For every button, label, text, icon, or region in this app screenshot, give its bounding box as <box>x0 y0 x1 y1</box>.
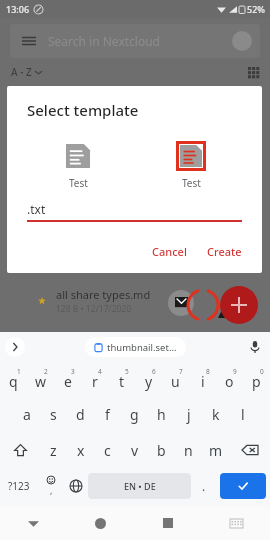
button[interactable]: l <box>229 397 256 432</box>
staticText: Search in Nextcloud <box>48 33 160 49</box>
staticText: w <box>35 372 47 391</box>
staticText: A - Z <box>11 65 32 79</box>
staticText: thumbnail.set… <box>107 341 177 354</box>
staticText: f <box>105 405 110 424</box>
staticText: Create <box>207 244 242 259</box>
staticText: 9 <box>233 367 237 376</box>
button[interactable]: Create <box>199 240 250 263</box>
staticText: x <box>77 441 85 460</box>
button[interactable]: z <box>40 432 67 468</box>
staticText: Select template <box>27 100 139 120</box>
button[interactable]: v <box>121 432 148 468</box>
button[interactable]: thumbnail.set… <box>85 337 186 357</box>
button[interactable]: Emoji <box>38 468 63 504</box>
staticText: r <box>92 372 98 391</box>
button[interactable]: Cancel <box>144 240 195 263</box>
button[interactable]: Home <box>67 506 134 540</box>
button[interactable]: EN • DE <box>88 473 191 499</box>
staticText: c <box>104 441 111 460</box>
button[interactable]: Back <box>0 506 67 540</box>
staticText: l <box>241 405 245 424</box>
button[interactable]: . <box>191 468 216 504</box>
staticText: 8 <box>206 367 210 376</box>
staticText: 0 <box>260 367 264 376</box>
staticText: , <box>50 484 53 496</box>
button[interactable]: 5 <box>108 362 135 397</box>
staticText: v <box>131 441 139 460</box>
staticText: q <box>9 372 18 391</box>
button[interactable]: 6 <box>135 362 162 397</box>
staticText: t <box>119 372 125 391</box>
staticText: 13:06 <box>6 3 30 15</box>
button[interactable]: 2 <box>27 362 54 397</box>
other: Menu <box>22 34 36 48</box>
button[interactable]: Menu <box>10 24 260 58</box>
button[interactable]: s <box>40 397 67 432</box>
button[interactable]: j <box>175 397 202 432</box>
staticText: all share types.md <box>56 287 151 302</box>
staticText: ?123 <box>8 479 30 493</box>
other: Mail <box>175 297 188 310</box>
button[interactable]: a <box>13 397 40 432</box>
button[interactable]: ?123 <box>0 468 38 504</box>
button[interactable]: h <box>148 397 175 432</box>
button[interactable]: Change language <box>63 468 88 504</box>
staticText: 6 <box>152 367 156 376</box>
button[interactable]: 1 <box>0 362 27 397</box>
staticText: n <box>184 441 193 460</box>
button[interactable]: 8 <box>189 362 216 397</box>
button[interactable]: 3 <box>54 362 81 397</box>
button[interactable]: n <box>175 432 202 468</box>
other: Voice input <box>249 341 261 353</box>
button[interactable]: Recents <box>134 506 202 540</box>
button[interactable]: x <box>67 432 94 468</box>
staticText: 1 <box>17 367 21 376</box>
staticText: m <box>209 441 223 460</box>
button[interactable]: Add <box>220 286 258 324</box>
button[interactable]: k <box>202 397 229 432</box>
button[interactable]: Account <box>232 31 252 51</box>
staticText: 4 <box>98 367 102 376</box>
staticText: 128 B • 12/17/2020 <box>56 303 132 315</box>
staticText: 2 <box>44 367 48 376</box>
button[interactable]: g <box>121 397 148 432</box>
button[interactable]: 9 <box>216 362 243 397</box>
button[interactable]: Test <box>60 138 96 193</box>
button[interactable]: 4 <box>81 362 108 397</box>
button[interactable]: 7 <box>162 362 189 397</box>
staticText: g <box>130 405 139 424</box>
button[interactable]: Grid view <box>248 67 259 78</box>
staticText: b <box>157 441 166 460</box>
staticText: .txt <box>27 201 46 217</box>
staticText: e <box>64 372 72 391</box>
button[interactable]: d <box>67 397 94 432</box>
staticText: d <box>76 405 85 424</box>
staticText: u <box>171 372 180 391</box>
staticText: Cancel <box>152 244 187 259</box>
button[interactable]: m <box>202 432 229 468</box>
button[interactable]: 0 <box>243 362 270 397</box>
button[interactable]: Done <box>220 473 266 499</box>
button[interactable]: More suggestions <box>5 337 25 357</box>
staticText: y <box>145 372 153 391</box>
staticText: j <box>187 405 191 424</box>
staticText: 7 <box>179 367 183 376</box>
staticText: 52% <box>247 3 265 15</box>
button[interactable]: Backspace <box>229 432 270 468</box>
staticText: 3 <box>71 367 75 376</box>
staticText: k <box>212 405 220 424</box>
button[interactable]: f <box>94 397 121 432</box>
button[interactable]: Hide keyboard <box>202 506 270 540</box>
button[interactable]: c <box>94 432 121 468</box>
staticText: o <box>225 372 234 391</box>
staticText: h <box>157 405 166 424</box>
button[interactable]: Shift <box>0 432 40 468</box>
staticText: Test <box>182 176 201 190</box>
staticText: . <box>202 478 206 494</box>
button[interactable]: b <box>148 432 175 468</box>
staticText: p <box>252 372 261 391</box>
staticText: a <box>23 405 31 424</box>
staticText: 5 <box>125 367 129 376</box>
button[interactable]: Test <box>173 138 209 193</box>
